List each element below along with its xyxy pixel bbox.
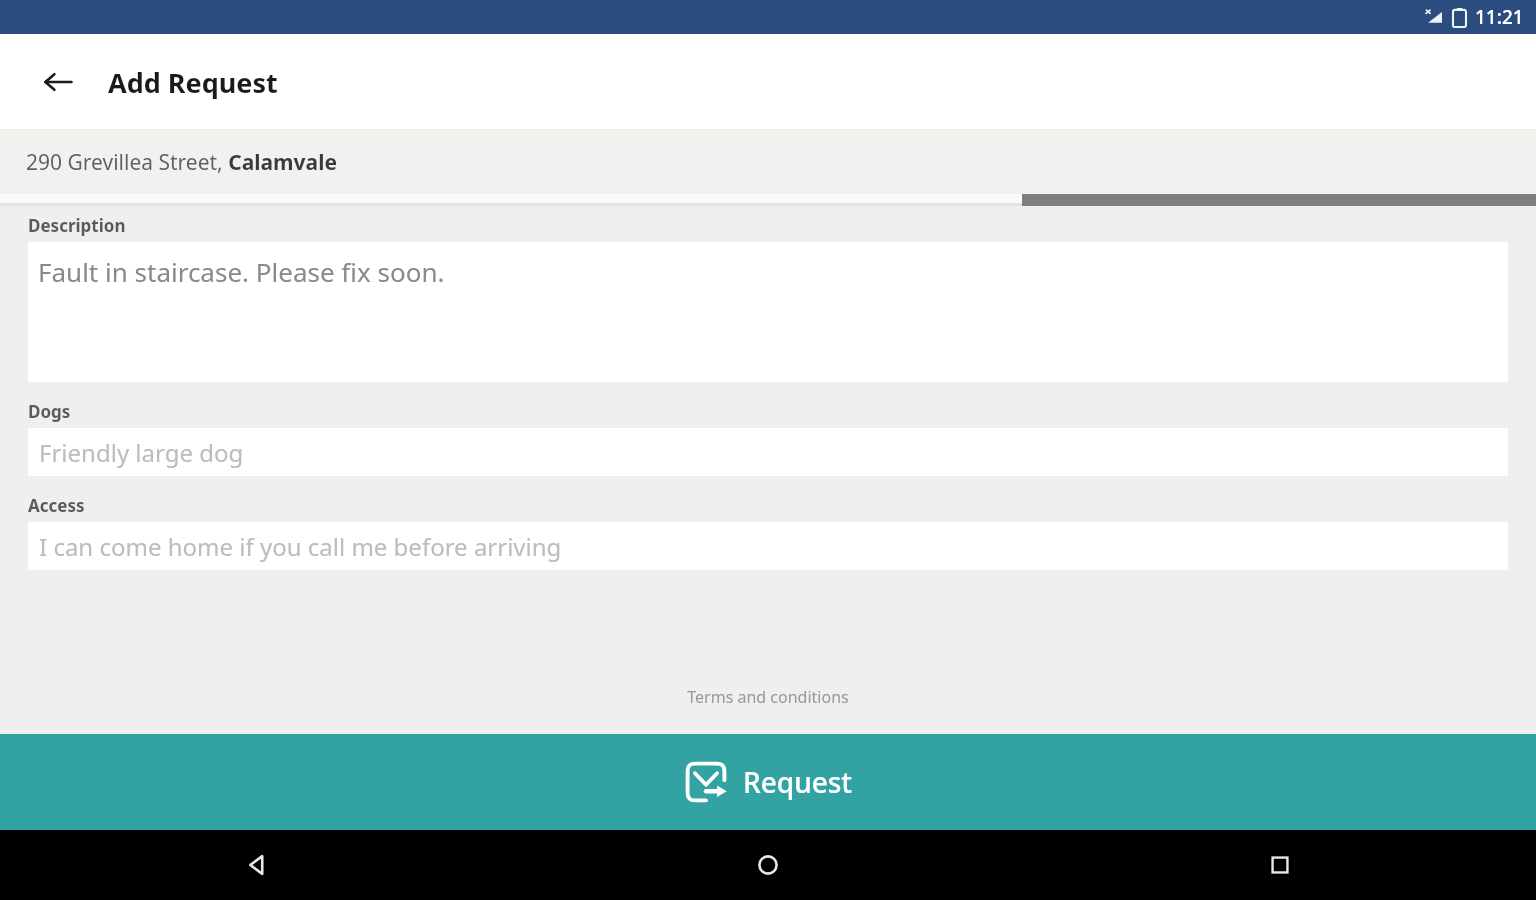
button[interactable]: 290 Grevillea Street, Calamvale bbox=[0, 130, 1536, 194]
staticText: Request bbox=[743, 763, 853, 801]
staticText: Access bbox=[28, 494, 85, 517]
staticText: Add Request bbox=[108, 64, 278, 101]
staticText: 290 Grevillea Street, Calamvale bbox=[26, 148, 337, 177]
staticText: Fault in staircase. Please fix soon. bbox=[38, 254, 445, 289]
button[interactable]: Recent apps bbox=[1024, 830, 1536, 900]
button[interactable]: Request bbox=[0, 734, 1536, 830]
button[interactable]: Fault in staircase. Please fix soon. bbox=[28, 242, 1508, 382]
staticText: Friendly large dog bbox=[39, 436, 244, 469]
button[interactable]: Terms and conditions bbox=[677, 682, 859, 712]
staticText: 11:21 bbox=[1475, 4, 1524, 30]
staticText: Description bbox=[28, 214, 126, 237]
button[interactable]: Friendly large dog bbox=[28, 428, 1508, 476]
button[interactable]: Back bbox=[30, 54, 86, 110]
button[interactable]: I can come home if you call me before ar… bbox=[28, 522, 1508, 570]
button[interactable]: Back bbox=[0, 830, 512, 900]
staticText: I can come home if you call me before ar… bbox=[39, 530, 562, 563]
button[interactable]: Home bbox=[512, 830, 1024, 900]
staticText: Dogs bbox=[28, 400, 71, 423]
staticText: Terms and conditions bbox=[687, 686, 849, 708]
